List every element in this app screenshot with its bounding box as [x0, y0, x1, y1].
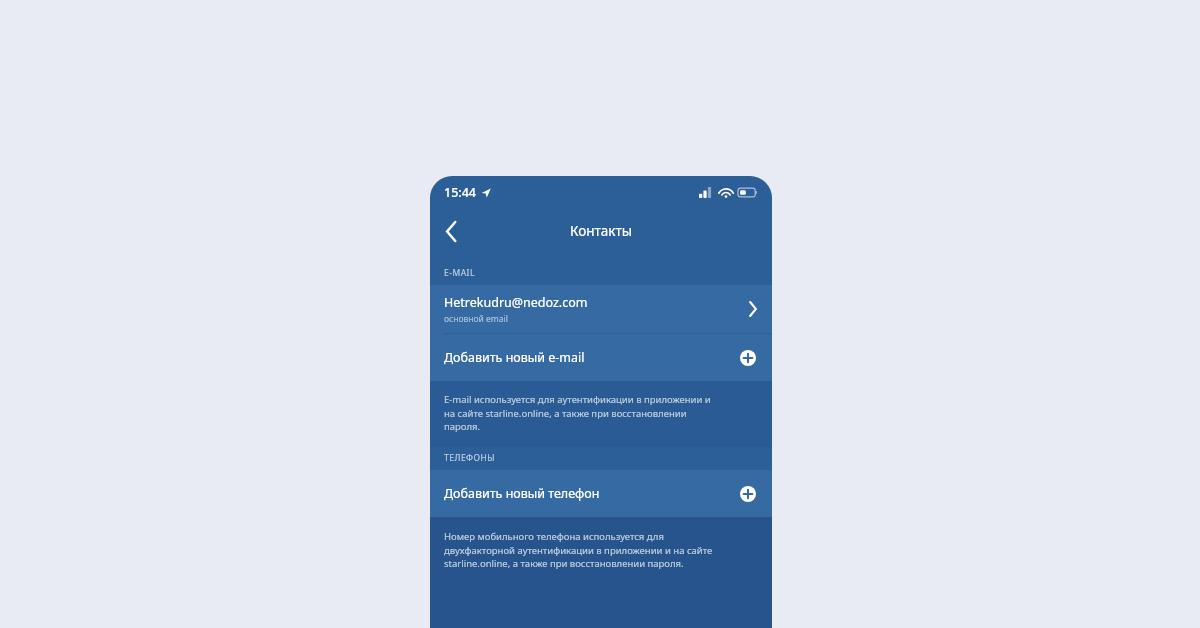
button[interactable]: Back [430, 210, 472, 252]
staticText: Контакты [570, 222, 632, 240]
staticText: Hetrekudru@nedoz.com [444, 294, 588, 311]
staticText: Номер мобильного телефона используется д… [444, 530, 713, 569]
staticText: 15:44 [444, 184, 477, 201]
staticText: ТЕЛЕФОНЫ [444, 452, 496, 464]
staticText: основной email [444, 313, 508, 325]
staticText: Добавить новый e-mail [444, 349, 740, 366]
button[interactable]: Добавить новый e-mail [430, 334, 772, 381]
staticText: Добавить новый телефон [444, 485, 740, 502]
button[interactable]: Hetrekudru@nedoz.com [430, 285, 772, 333]
staticText: E-mail используется для аутентификации в… [444, 393, 711, 432]
button[interactable]: Добавить новый телефон [430, 470, 772, 517]
staticText: E-MAIL [444, 267, 475, 279]
